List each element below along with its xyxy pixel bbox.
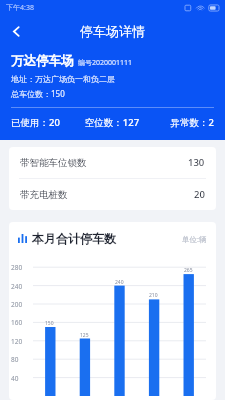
staticText: 240 — [11, 282, 23, 291]
staticText: 80 — [11, 355, 19, 364]
button[interactable]: 带充电桩数 — [9, 179, 216, 210]
staticText: 40 — [11, 374, 19, 383]
staticText: 本月合计停车数 — [32, 231, 116, 246]
staticText: 130 — [188, 156, 205, 169]
staticText: 240 — [115, 279, 124, 286]
staticText: 带智能车位锁数 — [20, 157, 87, 169]
staticText: 265 — [184, 267, 193, 274]
staticText: 总车位数：150 — [11, 88, 65, 99]
button[interactable]: Back — [0, 16, 32, 46]
staticText: 160 — [11, 318, 23, 327]
staticText: 210 — [149, 292, 158, 299]
staticText: 带充电桩数 — [20, 189, 68, 201]
staticText: 单位:辆 — [182, 234, 207, 244]
button[interactable]: 带智能车位锁数 — [9, 147, 216, 178]
staticText: 下午4:38 — [6, 3, 34, 13]
staticText: 20 — [194, 188, 205, 201]
staticText: 120 — [11, 337, 23, 346]
staticText: 地址：万达广场负一和负二层 — [11, 74, 115, 84]
staticText: 150 — [45, 320, 54, 327]
staticText: 200 — [11, 300, 23, 309]
staticText: 125 — [80, 332, 89, 339]
staticText: 停车场详情 — [80, 23, 145, 39]
staticText: 已使用：20 — [11, 116, 78, 129]
staticText: 异常数：2 — [146, 116, 214, 129]
staticText: 280 — [11, 263, 23, 272]
staticText: 编号2020001111 — [78, 58, 133, 68]
staticText: 万达停车场 — [11, 53, 74, 69]
staticText: 空位数：127 — [78, 116, 146, 129]
